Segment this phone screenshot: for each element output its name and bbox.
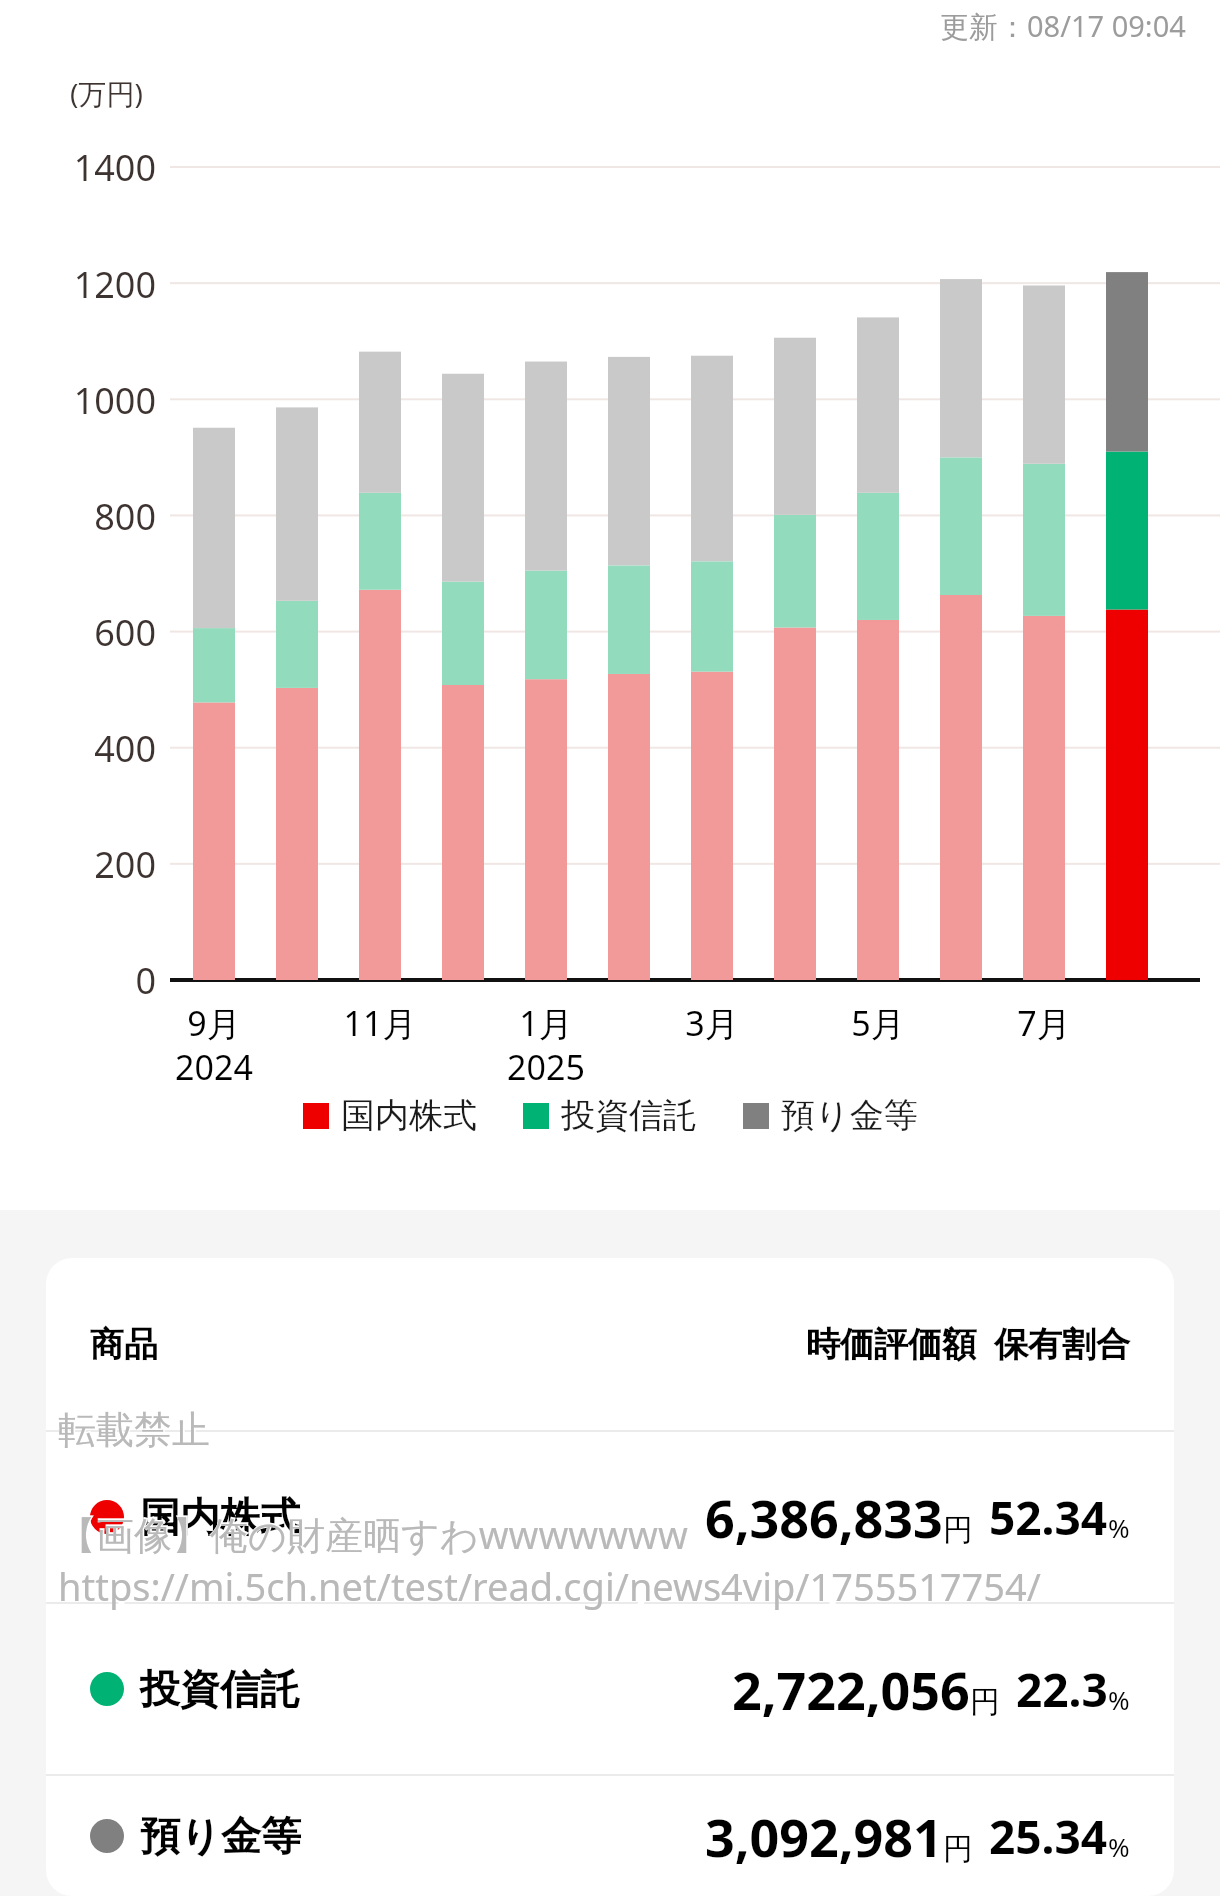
staticText: https://mi.5ch.net/test/read.cgi/news4vi… xyxy=(58,1560,1101,1612)
staticText: 預り金等 xyxy=(781,1094,918,1137)
staticText: 2,722,056 xyxy=(732,1654,970,1725)
staticText: 更新：08/17 09:04 xyxy=(940,6,1186,46)
staticText: 円 xyxy=(943,1511,973,1549)
staticText: 1000 xyxy=(36,376,156,425)
staticText: 転載禁止 xyxy=(58,1406,210,1454)
staticText: 3月 xyxy=(632,1000,792,1046)
staticText: 投資信託 xyxy=(561,1094,697,1137)
staticText: 1200 xyxy=(36,260,156,309)
button[interactable]: 預り金等 xyxy=(743,1094,918,1137)
staticText: 6,386,833 xyxy=(705,1482,943,1553)
staticText: 3,092,981 xyxy=(705,1801,943,1872)
button[interactable]: 投資信託 xyxy=(46,1604,1174,1774)
staticText: 5月 xyxy=(798,1000,958,1046)
staticText: 7月 xyxy=(964,1000,1124,1046)
button[interactable]: 国内株式 xyxy=(303,1094,477,1137)
staticText: (万円) xyxy=(70,74,143,112)
staticText: 円 xyxy=(970,1683,1000,1721)
staticText: 転載禁止 xyxy=(58,1406,210,1454)
button[interactable]: 国内株式 xyxy=(46,1432,1174,1602)
staticText: 投資信託 xyxy=(140,1664,300,1714)
staticText: 商品 xyxy=(90,1323,158,1366)
button[interactable]: 商品 xyxy=(46,1258,1174,1430)
staticText: 【画像】俺の財産晒すわwwwwwww xyxy=(58,1508,688,1560)
staticText: 円 xyxy=(943,1830,973,1868)
staticText: 保有割合 xyxy=(994,1323,1130,1366)
button[interactable]: 預り金等 xyxy=(46,1776,1174,1896)
staticText: 9月 2024 xyxy=(134,1000,294,1090)
staticText: 11月 xyxy=(300,1000,460,1046)
staticText: 1月 2025 xyxy=(466,1000,626,1090)
staticText: 0 xyxy=(36,956,156,1005)
staticText: 52.34 xyxy=(989,1486,1108,1549)
staticText: 【画像】俺の財産晒すわwwwwwww xyxy=(58,1508,707,1560)
staticText: https://mi.5ch.net/test/read.cgi/news4vi… xyxy=(58,1560,1041,1612)
staticText: 800 xyxy=(36,492,156,541)
staticText: 国内株式 xyxy=(140,1492,300,1542)
staticText: 国内株式 xyxy=(341,1094,477,1137)
staticText: 1400 xyxy=(36,143,156,192)
staticText: % xyxy=(1108,1829,1130,1864)
staticText: % xyxy=(1108,1682,1130,1717)
staticText: % xyxy=(1108,1510,1130,1545)
staticText: 25.34 xyxy=(989,1805,1108,1868)
staticText: 200 xyxy=(36,840,156,889)
staticText: 600 xyxy=(36,608,156,657)
staticText: 預り金等 xyxy=(140,1811,301,1861)
button[interactable]: 投資信託 xyxy=(523,1094,697,1137)
staticText: 400 xyxy=(36,724,156,773)
staticText: 22.3 xyxy=(1016,1658,1108,1721)
staticText: 時価評価額 xyxy=(806,1323,976,1366)
